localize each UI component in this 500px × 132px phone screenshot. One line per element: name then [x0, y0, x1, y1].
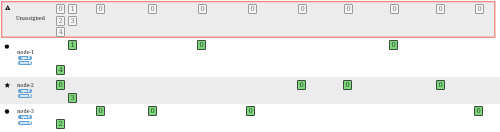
button[interactable]: 2	[56, 119, 65, 129]
button[interactable]: CPU capacity	[18, 115, 32, 119]
button[interactable]: 0	[474, 106, 483, 116]
button[interactable]: CPU capacity	[18, 89, 32, 93]
staticText: 1	[70, 39, 75, 49]
button[interactable]: 0	[475, 4, 484, 14]
button[interactable]: 4	[56, 27, 65, 37]
staticText: 0	[248, 105, 253, 115]
staticText: 0	[476, 105, 481, 115]
staticText: 0	[300, 3, 305, 13]
button[interactable]: 0	[436, 4, 445, 14]
button[interactable]: Unassigned	[16, 15, 45, 22]
staticText: 0	[391, 39, 396, 49]
button[interactable]: Memory capacity	[18, 61, 32, 65]
staticText: cpu 4	[21, 56, 30, 60]
staticText: 0	[98, 3, 103, 13]
button[interactable]: 3	[68, 93, 77, 103]
button[interactable]: 0	[96, 4, 105, 14]
button[interactable]: 0	[248, 4, 257, 14]
staticText: 1	[70, 3, 75, 13]
button[interactable]: 4	[56, 65, 65, 75]
staticText: mem 8	[20, 121, 31, 125]
staticText: 4	[58, 26, 63, 36]
staticText: 0	[477, 3, 482, 13]
staticText: 0	[200, 3, 205, 13]
button[interactable]: 0	[389, 40, 398, 50]
button[interactable]: 0	[198, 4, 207, 14]
staticText: 0	[199, 39, 204, 49]
staticText: 0	[438, 79, 443, 89]
staticText: 3	[70, 92, 75, 102]
button[interactable]: node-2	[17, 82, 34, 89]
staticText: 0	[250, 3, 255, 13]
staticText: 0	[345, 79, 350, 89]
staticText: mem 8	[20, 94, 31, 98]
button[interactable]: 0	[56, 4, 65, 14]
button[interactable]: 0	[344, 4, 353, 14]
button[interactable]: 1	[68, 4, 77, 14]
staticText: 3	[70, 15, 75, 25]
staticText: 0	[438, 3, 443, 13]
button[interactable]: 0	[297, 80, 306, 90]
staticText: 0	[98, 105, 103, 115]
staticText: 0	[150, 105, 155, 115]
button[interactable]: 0	[197, 40, 206, 50]
button[interactable]: 0	[56, 80, 65, 90]
staticText: cpu 4	[21, 115, 30, 119]
button[interactable]: CPU capacity	[18, 56, 32, 60]
button[interactable]: 2	[56, 16, 65, 26]
staticText: 0	[346, 3, 351, 13]
button[interactable]: 0	[148, 4, 157, 14]
button[interactable]: 0	[96, 106, 105, 116]
button[interactable]: 3	[68, 16, 77, 26]
staticText: 4	[58, 64, 63, 74]
button[interactable]: node-3	[17, 108, 34, 115]
button[interactable]: 0	[436, 80, 445, 90]
button[interactable]: node-1	[17, 49, 34, 56]
staticText: 0	[58, 3, 63, 13]
button[interactable]: 0	[390, 4, 399, 14]
button[interactable]: 0	[298, 4, 307, 14]
button[interactable]: 0	[148, 106, 157, 116]
staticText: 0	[299, 79, 304, 89]
button[interactable]: Memory capacity	[18, 121, 32, 125]
staticText: 2	[58, 118, 63, 128]
button[interactable]: 1	[68, 40, 77, 50]
staticText: 0	[392, 3, 397, 13]
staticText: cpu 4	[21, 89, 30, 93]
button[interactable]: 0	[246, 106, 255, 116]
staticText: 0	[150, 3, 155, 13]
button[interactable]: 0	[343, 80, 352, 90]
button[interactable]: Memory capacity	[18, 94, 32, 98]
staticText: mem 8	[20, 61, 31, 65]
staticText: 2	[58, 15, 63, 25]
staticText: 0	[58, 79, 63, 89]
